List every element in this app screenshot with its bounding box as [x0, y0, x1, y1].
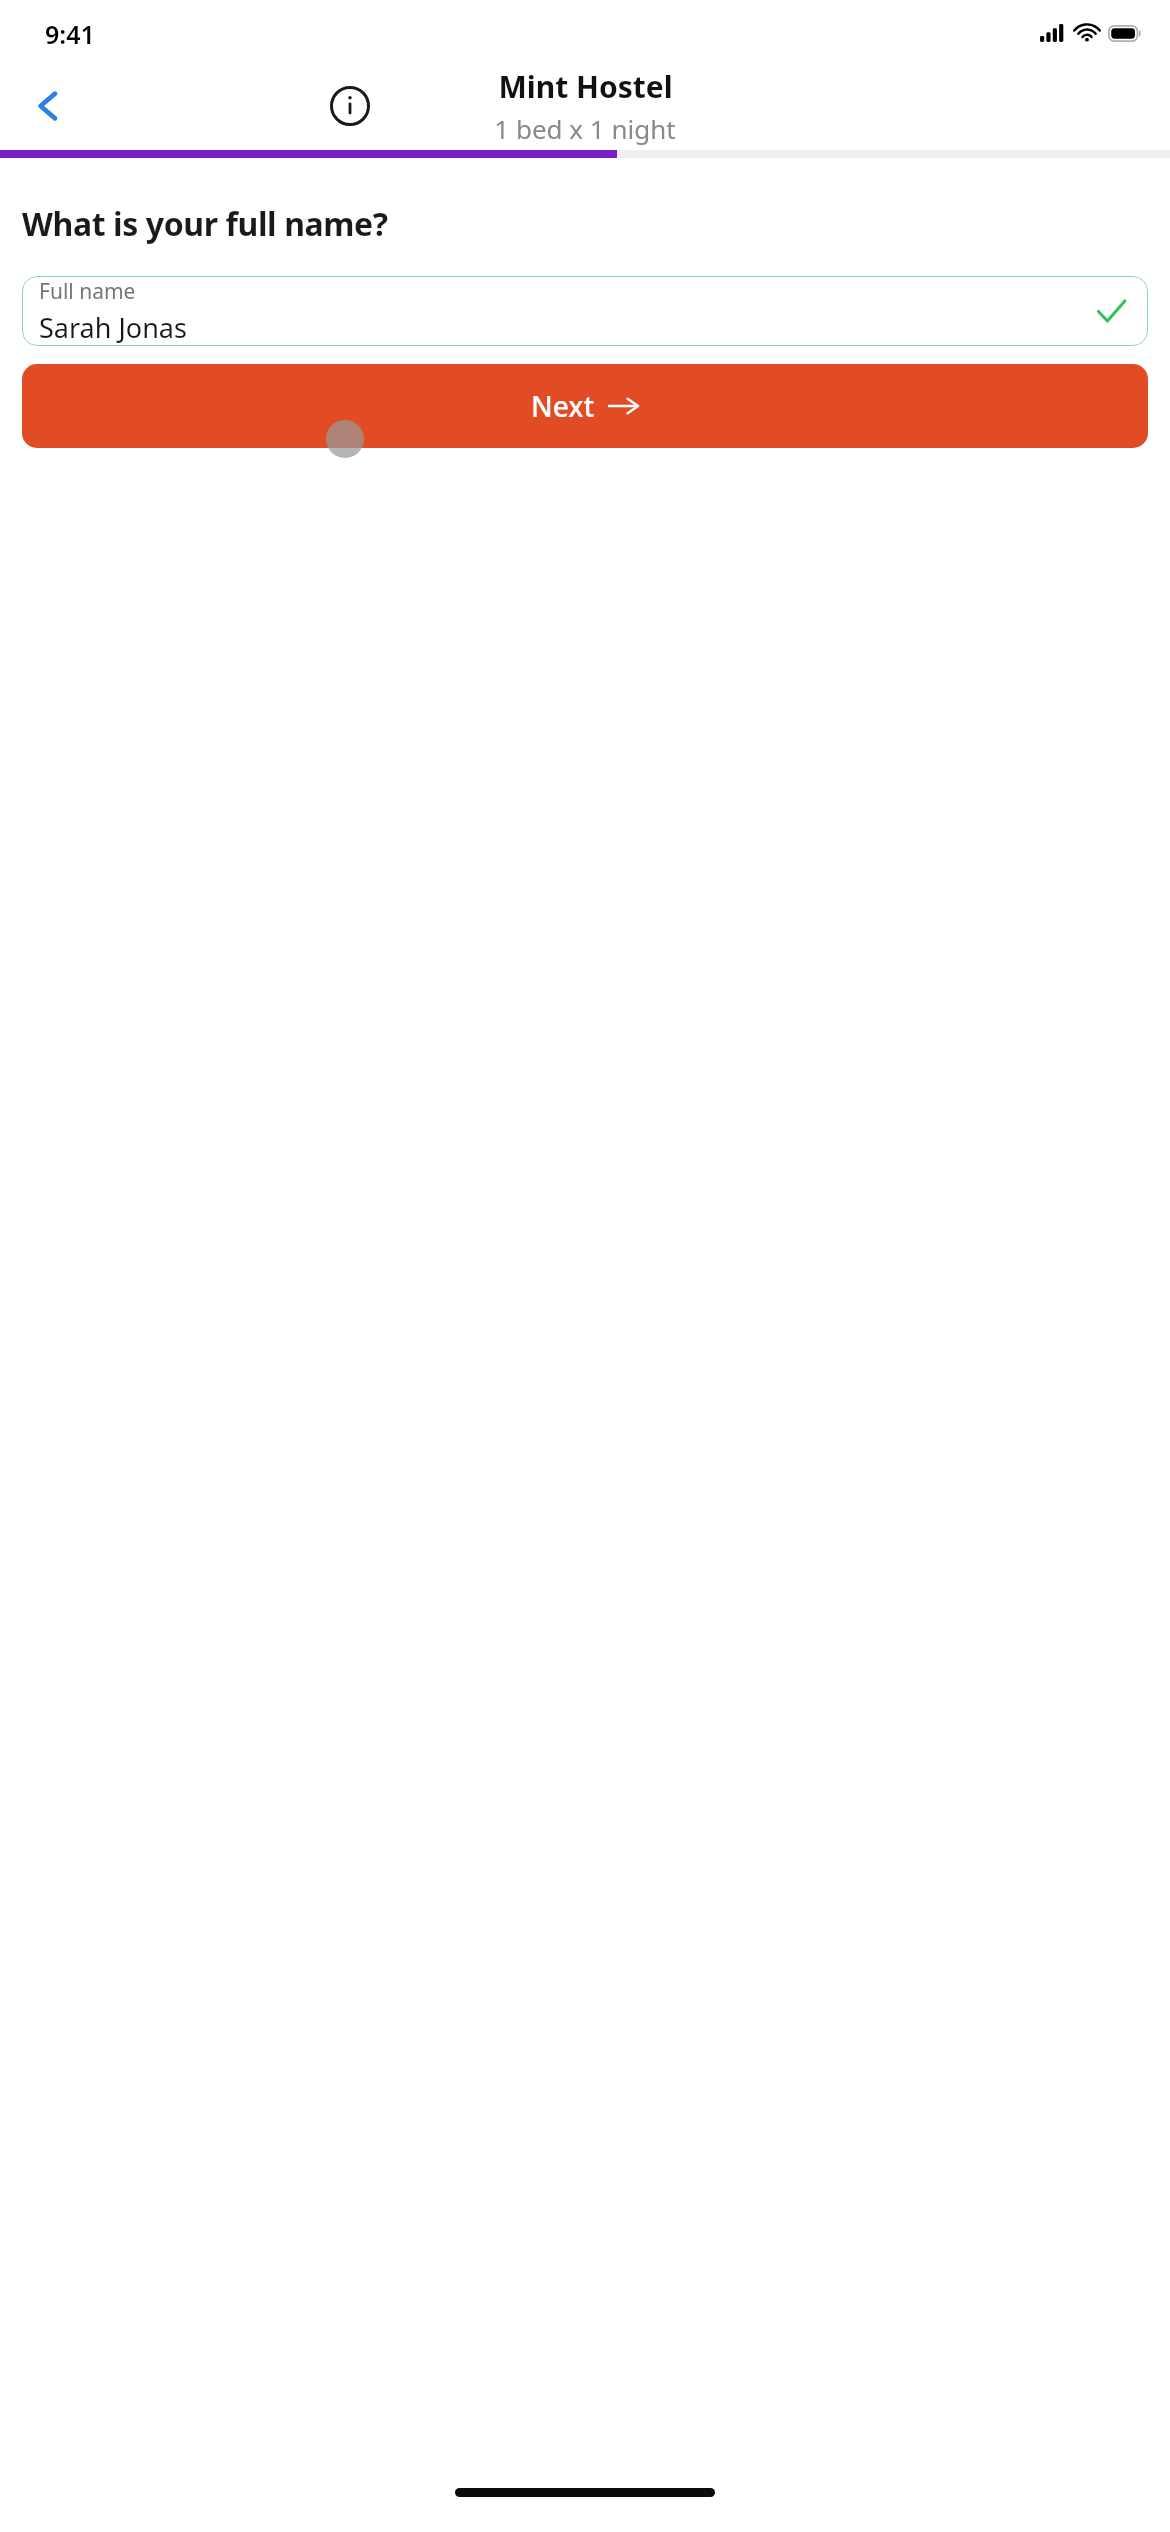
- staticText: Mint Hostel: [498, 66, 673, 107]
- button[interactable]: Info: [322, 78, 378, 134]
- staticText: Next: [531, 387, 595, 425]
- button[interactable]: Back: [20, 78, 76, 134]
- staticText: 1 bed x 1 night: [494, 111, 676, 146]
- staticText: Sarah Jonas: [39, 309, 187, 346]
- button[interactable]: Next: [22, 364, 1148, 448]
- staticText: Full name: [39, 277, 136, 306]
- staticText: 9:41: [45, 17, 95, 51]
- button[interactable]: Full name: [22, 276, 1148, 346]
- staticText: What is your full name?: [22, 202, 388, 246]
